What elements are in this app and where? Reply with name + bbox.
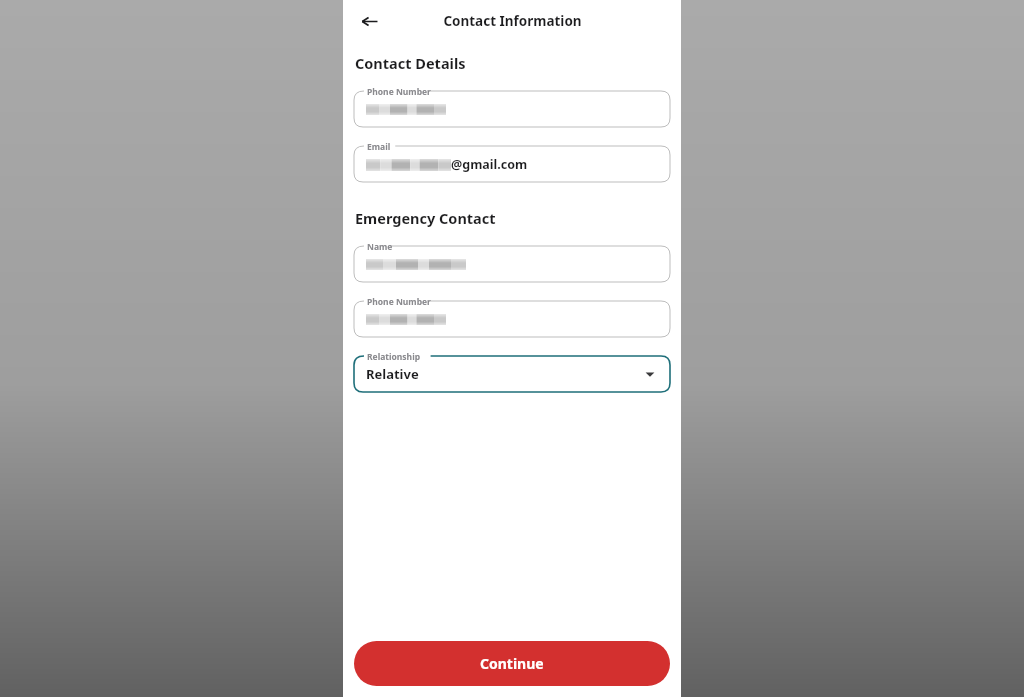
button[interactable]: Continue: [354, 641, 670, 686]
staticText: Name: [367, 241, 393, 253]
button[interactable]: Phone Number: [354, 84, 670, 127]
other: Open relationship dropdown: [642, 366, 658, 382]
staticText: Contact Information: [443, 12, 582, 30]
staticText: Emergency Contact: [355, 208, 496, 228]
staticText: Relative: [366, 365, 419, 383]
button[interactable]: Back: [351, 3, 387, 39]
staticText: @gmail.com: [451, 156, 528, 173]
staticText: Contact Details: [355, 53, 466, 73]
button[interactable]: Phone Number: [354, 294, 670, 337]
button[interactable]: Relationship: [354, 349, 670, 392]
button[interactable]: Email: [354, 139, 670, 182]
staticText: Phone Number: [367, 86, 431, 98]
staticText: Email: [367, 141, 391, 153]
staticText: Continue: [480, 654, 544, 673]
staticText: Relationship: [367, 351, 421, 363]
button[interactable]: Name: [354, 239, 670, 282]
staticText: Phone Number: [367, 296, 431, 308]
